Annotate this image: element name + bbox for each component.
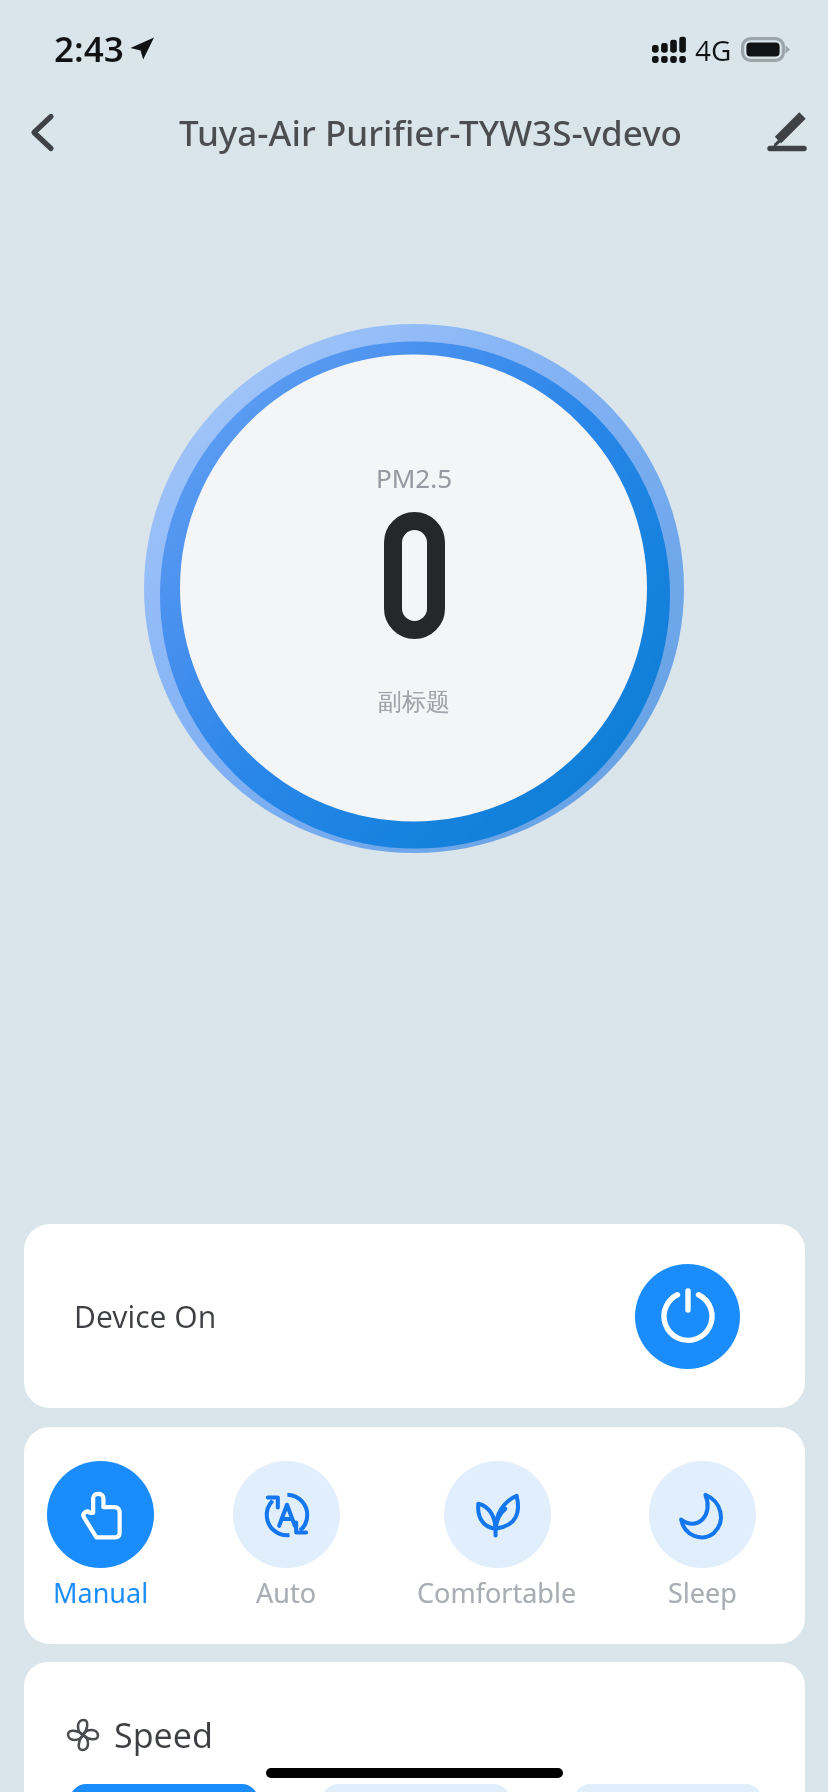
staticText: 副标题: [378, 687, 450, 717]
staticText: 2:43: [54, 25, 124, 73]
staticText: Manual: [53, 1574, 149, 1611]
button[interactable]: Auto: [191, 1451, 381, 1621]
button[interactable]: [70, 1784, 258, 1792]
staticText: Comfortable: [417, 1574, 577, 1611]
button[interactable]: Power toggle: [635, 1264, 740, 1369]
button[interactable]: Rename device: [738, 84, 828, 180]
button[interactable]: [322, 1784, 510, 1792]
staticText: Tuya-Air Purifier-TYW3S-vdevo: [179, 109, 682, 157]
button[interactable]: [574, 1784, 762, 1792]
button[interactable]: Sleep: [607, 1451, 797, 1621]
button[interactable]: Comfortable: [402, 1451, 592, 1621]
button[interactable]: Back: [0, 84, 84, 168]
staticText: Auto: [256, 1574, 317, 1611]
staticText: Device On: [74, 1296, 217, 1337]
staticText: Speed: [114, 1712, 213, 1758]
staticText: 4G: [695, 31, 732, 69]
button[interactable]: Manual: [24, 1451, 195, 1621]
staticText: PM2.5: [376, 460, 453, 495]
staticText: Sleep: [668, 1574, 737, 1611]
